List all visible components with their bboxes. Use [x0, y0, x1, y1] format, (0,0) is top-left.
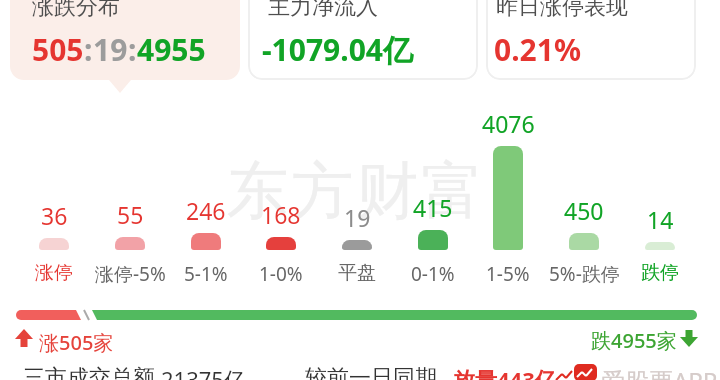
staticText: 较前一日同期	[305, 364, 437, 380]
staticText: 5-1%	[184, 261, 228, 287]
staticText: -1079.04亿	[262, 29, 413, 70]
staticText: :	[84, 29, 93, 70]
staticText: 1-5%	[486, 261, 530, 287]
staticText: 主力净流入	[268, 0, 378, 21]
staticText: 19	[344, 202, 371, 233]
staticText: 放量443亿	[453, 364, 557, 380]
staticText: 爱股票APP	[601, 364, 718, 380]
button[interactable]	[10, 0, 240, 80]
staticText: 55	[117, 199, 144, 230]
staticText: 4076	[482, 108, 535, 139]
staticText: 跌4955家	[591, 327, 677, 354]
staticText: 36	[41, 200, 68, 231]
button[interactable]	[248, 0, 478, 80]
staticText: 5%-跌停	[549, 261, 620, 287]
button[interactable]	[486, 0, 696, 80]
staticText: 平盘	[338, 261, 376, 285]
staticText: :	[128, 29, 137, 70]
staticText: 涨505家	[39, 329, 114, 356]
staticText: 涨停	[35, 261, 73, 285]
staticText: 0-1%	[411, 261, 455, 287]
staticText: 246	[186, 195, 226, 226]
staticText: 450	[564, 195, 604, 226]
staticText: 0.21%	[494, 29, 581, 70]
staticText: 505	[32, 29, 84, 70]
staticText: 14	[647, 204, 674, 235]
staticText: 三市成交总额	[23, 364, 155, 380]
staticText: 东方财富	[225, 152, 485, 230]
staticText: 4955	[137, 29, 206, 70]
staticText: 1-0%	[259, 261, 303, 287]
staticText: 19	[93, 29, 128, 70]
staticText: 21375亿	[161, 364, 246, 380]
staticText: 涨停-5%	[95, 261, 166, 287]
staticText: 跌停	[641, 261, 679, 285]
staticText: 昨日涨停表现	[496, 0, 628, 21]
staticText: 涨跌分布	[32, 0, 120, 21]
staticText: 168	[261, 199, 301, 230]
staticText: 415	[413, 192, 453, 223]
